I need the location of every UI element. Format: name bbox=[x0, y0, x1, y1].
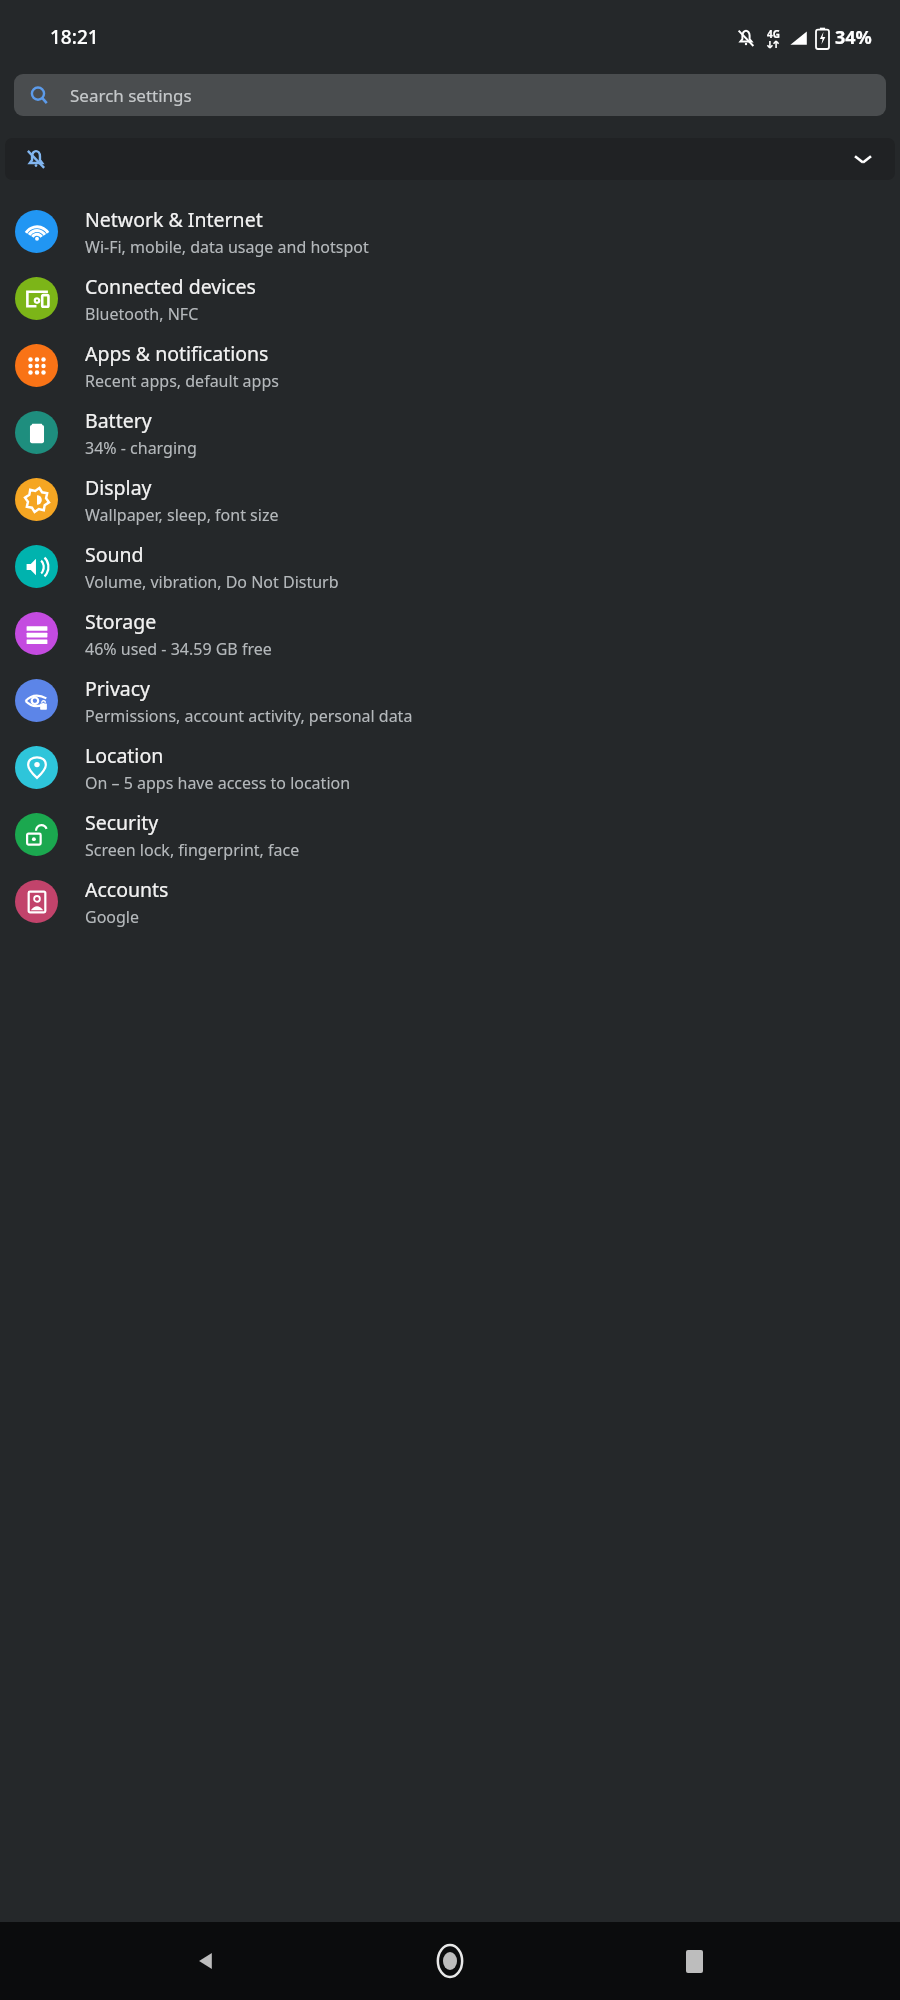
button[interactable]: Location bbox=[0, 734, 900, 801]
staticText: Screen lock, fingerprint, face bbox=[85, 839, 300, 861]
button[interactable]: Privacy bbox=[0, 667, 900, 734]
button[interactable]: Sound bbox=[0, 533, 900, 600]
button[interactable]: Apps & notifications bbox=[0, 332, 900, 399]
staticText: Storage bbox=[85, 608, 157, 635]
staticText: Connected devices bbox=[85, 273, 256, 300]
button[interactable]: Connected devices bbox=[0, 265, 900, 332]
staticText: Google bbox=[85, 906, 140, 928]
button[interactable]: Storage bbox=[0, 600, 900, 667]
button[interactable]: Back bbox=[170, 1924, 244, 1998]
staticText: Battery bbox=[85, 407, 152, 434]
button[interactable]: Network & Internet bbox=[0, 198, 900, 265]
staticText: Search settings bbox=[70, 84, 192, 107]
button[interactable]: Battery bbox=[0, 399, 900, 466]
staticText: Recent apps, default apps bbox=[85, 370, 279, 392]
button[interactable]: Display bbox=[0, 466, 900, 533]
staticText: Network & Internet bbox=[85, 206, 263, 233]
staticText: Wi-Fi, mobile, data usage and hotspot bbox=[85, 236, 369, 258]
staticText: 46% used - 34.59 GB free bbox=[85, 638, 272, 660]
button[interactable]: Security bbox=[0, 801, 900, 868]
staticText: Wallpaper, sleep, font size bbox=[85, 504, 279, 526]
button[interactable]: Search settings bbox=[14, 74, 886, 116]
staticText: Location bbox=[85, 742, 164, 769]
staticText: Apps & notifications bbox=[85, 340, 269, 367]
staticText: Security bbox=[85, 809, 159, 836]
button[interactable]: Home bbox=[413, 1924, 487, 1998]
staticText: Permissions, account activity, personal … bbox=[85, 705, 413, 727]
staticText: On – 5 apps have access to location bbox=[85, 772, 351, 794]
staticText: Bluetooth, NFC bbox=[85, 303, 199, 325]
button[interactable]: Accounts bbox=[0, 868, 900, 935]
staticText: 18:21 bbox=[50, 24, 99, 50]
staticText: 34% bbox=[835, 25, 872, 50]
staticText: 4G bbox=[767, 27, 780, 41]
button[interactable]: Expand bbox=[5, 138, 895, 180]
staticText: Privacy bbox=[85, 675, 151, 702]
staticText: Sound bbox=[85, 541, 144, 568]
staticText: Display bbox=[85, 474, 152, 501]
staticText: 34% - charging bbox=[85, 437, 197, 459]
staticText: Volume, vibration, Do Not Disturb bbox=[85, 571, 339, 593]
button[interactable]: Recents bbox=[657, 1924, 731, 1998]
other: Expand bbox=[855, 151, 871, 167]
staticText: Accounts bbox=[85, 876, 169, 903]
